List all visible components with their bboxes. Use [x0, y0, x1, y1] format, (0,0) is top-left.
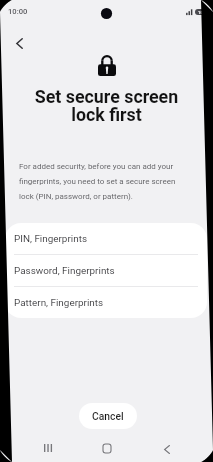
button[interactable]: Recent apps [33, 433, 63, 462]
button[interactable]: Pattern, Fingerprints [5, 287, 207, 318]
staticText: Cancel [92, 410, 124, 422]
staticText: Pattern, Fingerprints [14, 297, 104, 309]
button[interactable]: PIN, Fingerprints [5, 223, 207, 254]
staticText: PIN, Fingerprints [14, 233, 87, 245]
button[interactable]: Home [92, 433, 122, 462]
button[interactable]: Navigate up [6, 30, 33, 57]
button[interactable]: Back [152, 434, 182, 462]
staticText: 100 [198, 10, 206, 15]
staticText: Password, Fingerprints [14, 265, 115, 277]
staticText: Set secure screen lock first [8, 86, 205, 125]
button[interactable]: Cancel [79, 403, 137, 429]
staticText: 10:00 [8, 7, 28, 16]
button[interactable]: Password, Fingerprints [5, 255, 207, 286]
staticText: For added security, before you can add y… [19, 162, 199, 201]
